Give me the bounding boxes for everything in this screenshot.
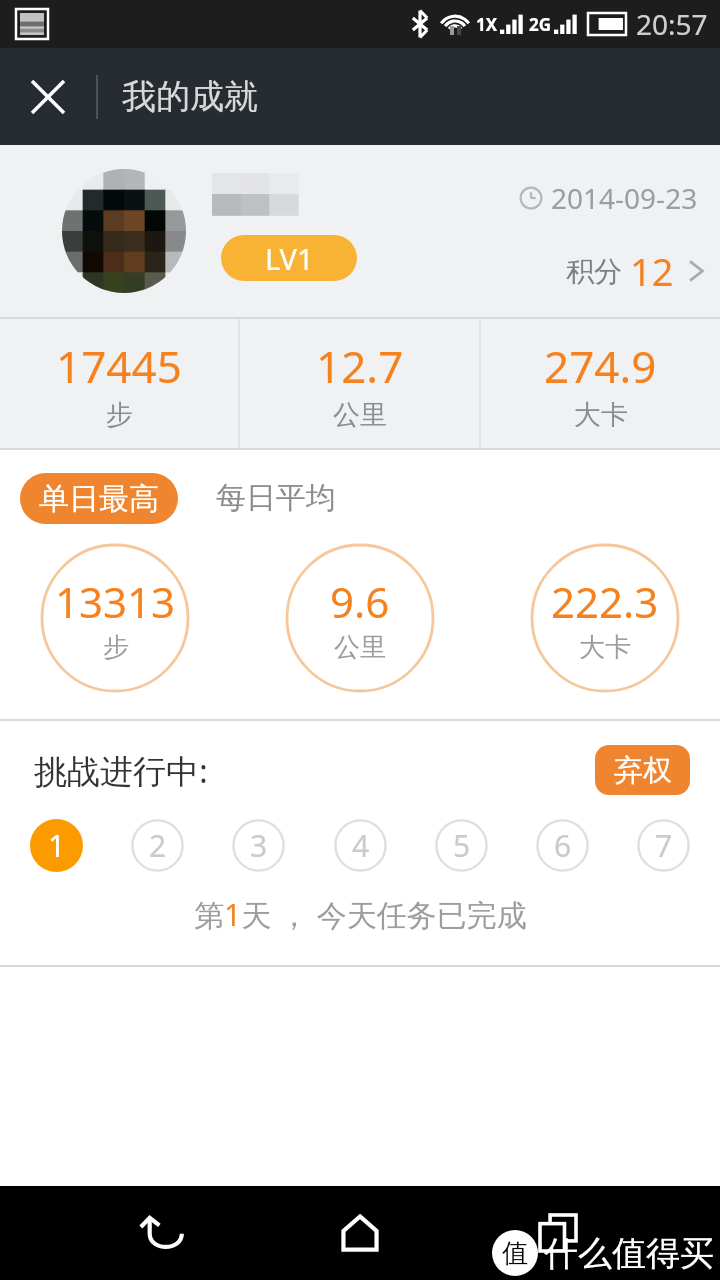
staticText: 12 xyxy=(630,245,674,297)
staticText: 值 xyxy=(502,1237,528,1270)
button[interactable]: Recent apps xyxy=(518,1193,598,1273)
button[interactable]: 1 xyxy=(30,819,83,872)
staticText: LV1 xyxy=(265,239,314,278)
button[interactable]: Home xyxy=(320,1193,400,1273)
staticText: 大卡 xyxy=(574,398,628,432)
staticText: 公里 xyxy=(333,398,387,432)
button[interactable]: 每日平均 xyxy=(216,479,336,517)
button[interactable]: LV1 xyxy=(0,145,720,317)
staticText: 挑战进行中: xyxy=(34,748,208,793)
button[interactable]: Close xyxy=(16,65,80,129)
button[interactable]: 12.7 xyxy=(240,319,479,448)
staticText: 9.6 xyxy=(330,573,390,630)
staticText: 3 xyxy=(250,825,268,866)
staticText: 1 xyxy=(48,825,66,866)
button[interactable]: Back xyxy=(122,1193,202,1273)
button[interactable]: 2 xyxy=(131,819,184,872)
button[interactable]: 7 xyxy=(637,819,690,872)
staticText: 单日最高 xyxy=(39,480,159,518)
button[interactable]: 13313 xyxy=(40,543,190,693)
button[interactable]: 222.3 xyxy=(530,543,680,693)
staticText: 每日平均 xyxy=(216,479,336,517)
staticText: 大卡 xyxy=(579,631,631,664)
staticText: 7 xyxy=(655,825,673,866)
staticText: 13313 xyxy=(55,573,176,630)
staticText: 274.9 xyxy=(544,336,657,396)
staticText: 5 xyxy=(453,825,471,866)
staticText: 什么值得买 xyxy=(544,1232,714,1275)
staticText: 1X xyxy=(476,13,498,36)
button[interactable]: 9.6 xyxy=(285,543,435,693)
staticText: 公里 xyxy=(334,631,386,664)
button[interactable]: 积分 xyxy=(566,245,706,297)
button[interactable]: 3 xyxy=(232,819,285,872)
staticText: 弃权 xyxy=(614,752,672,789)
staticText: 4 xyxy=(352,825,370,866)
staticText: 我的成就 xyxy=(122,75,258,118)
staticText: 222.3 xyxy=(551,573,659,630)
staticText: 步 xyxy=(106,398,133,432)
button[interactable]: 弃权 xyxy=(595,745,690,795)
staticText: 17445 xyxy=(56,336,182,396)
staticText: 步 xyxy=(103,631,129,664)
button[interactable]: 5 xyxy=(435,819,488,872)
staticText: 2014-09-23 xyxy=(551,179,698,217)
button[interactable]: 单日最高 xyxy=(20,473,178,524)
button[interactable]: 17445 xyxy=(0,319,238,448)
staticText: 2 xyxy=(149,825,167,866)
button[interactable]: 274.9 xyxy=(481,319,720,448)
button[interactable]: LV1 xyxy=(221,235,357,281)
staticText: 6 xyxy=(554,825,572,866)
staticText: 第1天 ， 今天任务已完成 xyxy=(194,894,527,935)
staticText: 20:57 xyxy=(636,5,708,43)
button[interactable]: 4 xyxy=(334,819,387,872)
button[interactable]: 6 xyxy=(536,819,589,872)
staticText: 积分 xyxy=(566,254,622,289)
staticText: 12.7 xyxy=(316,336,404,396)
staticText: 2G xyxy=(529,13,552,36)
